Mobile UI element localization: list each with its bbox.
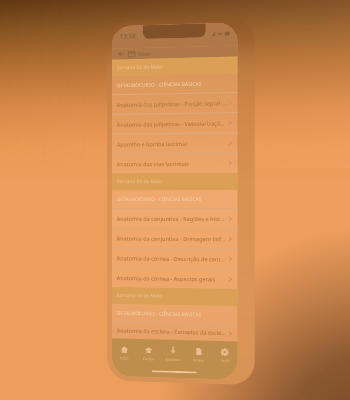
button[interactable]: Anatomia das pálpebras - Vascularização … — [112, 112, 238, 134]
staticText: OFTALMOCURSO - CIÊNCIAS BÁSICAS — [117, 196, 202, 203]
staticText: Anatomia das pálpebras - Vascularização … — [117, 119, 227, 129]
staticText: Anatomia da esclera - Camadas da esclera — [117, 327, 227, 337]
staticText: OFTALMOCURSO - CIÊNCIAS BÁSICAS — [117, 80, 202, 89]
staticText: Anatomia das pálpebras - Porção septal e… — [117, 99, 227, 109]
button[interactable]: Anatomia da córnea - Aspectos gerais — [112, 267, 238, 289]
staticText: Início — [120, 355, 129, 361]
button[interactable]: Início — [112, 338, 136, 367]
button[interactable]: Anatomia da conjuntiva - Drenagem linfát… — [112, 228, 238, 248]
staticText: Cursos — [143, 356, 154, 361]
staticText: Semana 02 de Maio — [117, 63, 162, 71]
button[interactable]: Aparelho e bomba lacrimal — [112, 132, 238, 154]
staticText: Provas — [193, 357, 205, 363]
button[interactable]: Anatomia das pálpebras - Porção septal e… — [112, 92, 238, 114]
staticText: Semana 16 de Maio — [117, 292, 162, 300]
staticText: Anatomia da conjuntiva - Drenagem linfát… — [117, 235, 227, 243]
button[interactable]: Anatomia da córnea - Descrição de camada… — [112, 247, 238, 269]
button[interactable]: Baixados — [160, 339, 186, 368]
staticText: Aparelho e bomba lacrimal — [117, 139, 227, 149]
staticText: Anatomia das vias lacrimais — [117, 160, 227, 168]
button[interactable]: Provas — [186, 340, 212, 369]
button[interactable]: Perfil — [212, 341, 238, 370]
staticText: Semana 09 de Maio — [117, 178, 162, 185]
staticText: Baixados — [165, 357, 181, 362]
staticText: OFTALMOCURSO - CIÊNCIAS BÁSICAS — [117, 310, 202, 318]
staticText: 13:58 — [120, 31, 136, 41]
staticText: Maio — [138, 50, 151, 57]
button[interactable]: Cursos — [136, 339, 160, 367]
staticText: Anatomia da conjuntiva - Regiões e histo… — [117, 215, 227, 223]
staticText: Anatomia da córnea - Aspectos gerais — [117, 274, 227, 284]
button[interactable]: Anatomia da conjuntiva - Regiões e histo… — [112, 208, 238, 228]
button[interactable]: Anatomia das vias lacrimais — [112, 152, 238, 173]
staticText: Perfil — [221, 358, 230, 363]
staticText: Anatomia da córnea - Descrição de camada… — [117, 254, 227, 263]
button[interactable]: Anatomia da esclera - Camadas da esclera — [112, 321, 238, 341]
button[interactable]: Back — [117, 49, 125, 59]
